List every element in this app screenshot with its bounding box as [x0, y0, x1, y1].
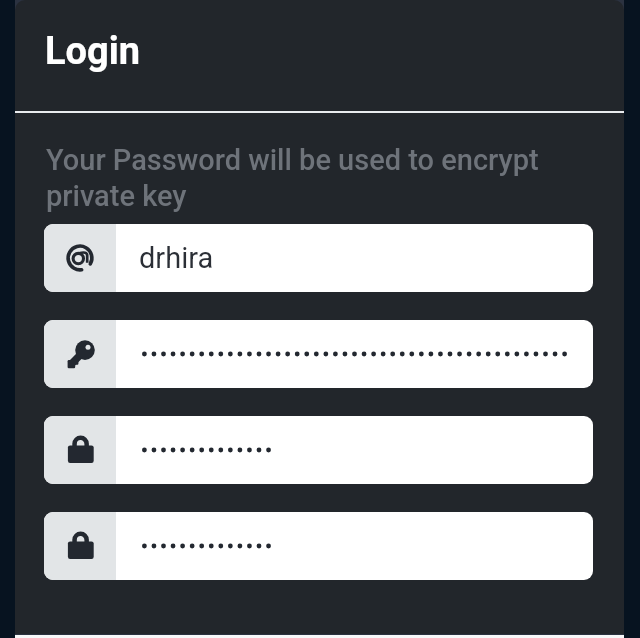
button[interactable]: Key [44, 320, 593, 388]
button[interactable]: Password [44, 416, 593, 484]
other: Email [65, 243, 95, 273]
button[interactable]: Password [44, 512, 593, 580]
staticText: Login [45, 29, 141, 74]
button[interactable]: Email [44, 224, 593, 292]
staticText: Your Password will be used to encrypt pr… [46, 143, 586, 213]
other: Key [65, 339, 95, 369]
other: Password [65, 531, 95, 561]
staticText: drhira [139, 241, 214, 275]
other: Password [65, 435, 95, 465]
